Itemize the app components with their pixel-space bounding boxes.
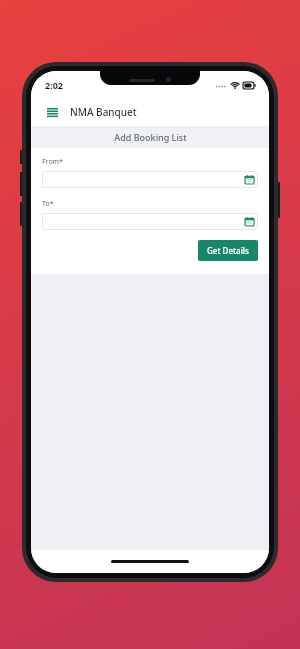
staticText: Add Booking List — [114, 131, 187, 143]
staticText: 2:02 — [45, 79, 63, 91]
button[interactable]: Select to date — [42, 213, 258, 230]
staticText: From* — [42, 157, 64, 167]
staticText: To* — [42, 199, 54, 209]
button[interactable]: Open navigation menu — [43, 103, 61, 121]
button[interactable]: Select from date — [42, 171, 258, 188]
staticText: NMA Banquet — [70, 105, 137, 119]
staticText: Get Details — [207, 245, 249, 256]
button[interactable]: Get Details — [198, 240, 258, 261]
